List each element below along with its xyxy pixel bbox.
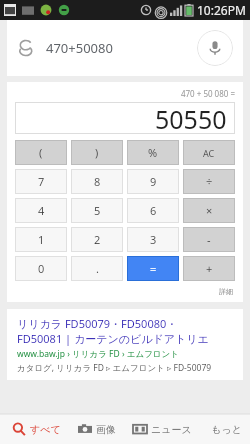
staticText: ×: [206, 203, 213, 218]
button[interactable]: .: [71, 256, 123, 281]
staticText: すべて: [30, 423, 61, 436]
staticText: 10:26PM: [197, 2, 246, 18]
button[interactable]: 8: [71, 169, 123, 194]
staticText: .: [96, 261, 99, 276]
button[interactable]: もっと: [209, 423, 244, 436]
button[interactable]: ニュース: [131, 422, 194, 436]
button[interactable]: 9: [127, 169, 179, 194]
staticText: 3: [150, 232, 157, 247]
staticText: 画像: [96, 423, 116, 436]
button[interactable]: 3: [127, 227, 179, 252]
button[interactable]: すべて: [10, 422, 63, 436]
staticText: +: [206, 261, 213, 276]
button[interactable]: +: [183, 256, 235, 281]
staticText: ): [95, 145, 99, 160]
button[interactable]: 470+50080: [7, 20, 243, 76]
staticText: 8: [94, 174, 101, 189]
button[interactable]: ÷: [183, 169, 235, 194]
button[interactable]: 1: [15, 227, 67, 252]
staticText: FD50081 | カーテンのビルドアトリエ: [17, 331, 209, 346]
staticText: カタログ, リリカラ FD ▹ エムフロント ▹ FD-50079: [17, 362, 212, 374]
staticText: www.baw.jp › リリカラ FD › エムフロント: [17, 348, 179, 360]
button[interactable]: (: [15, 140, 67, 165]
staticText: 6: [150, 203, 157, 218]
button[interactable]: 4: [15, 198, 67, 223]
staticText: 1: [38, 232, 45, 247]
staticText: 470 + 50 080 =: [15, 88, 235, 99]
staticText: 7: [38, 174, 45, 189]
staticText: リリカラ FD50079・FD50080・: [17, 316, 178, 331]
staticText: ニュース: [151, 423, 192, 436]
button[interactable]: 6: [127, 198, 179, 223]
button[interactable]: Voice search: [197, 30, 233, 66]
button[interactable]: 0: [15, 256, 67, 281]
button[interactable]: -: [183, 227, 235, 252]
staticText: 0: [38, 261, 45, 276]
staticText: =: [150, 261, 157, 276]
staticText: 5: [94, 203, 101, 218]
button[interactable]: =: [127, 256, 179, 281]
staticText: -: [207, 232, 211, 247]
staticText: AC: [203, 147, 215, 159]
staticText: %: [148, 145, 158, 160]
button[interactable]: 2: [71, 227, 123, 252]
staticText: (: [39, 145, 43, 160]
staticText: 50550: [155, 102, 227, 134]
button[interactable]: %: [127, 140, 179, 165]
button[interactable]: 画像: [76, 422, 118, 436]
button[interactable]: 7: [15, 169, 67, 194]
staticText: 9: [150, 174, 157, 189]
button[interactable]: AC: [183, 140, 235, 165]
staticText: ÷: [206, 174, 213, 189]
staticText: 4: [38, 203, 45, 218]
button[interactable]: 詳細: [15, 287, 235, 296]
staticText: 2: [94, 232, 101, 247]
button[interactable]: 5: [71, 198, 123, 223]
button[interactable]: リリカラ FD50079・FD50080・: [7, 309, 243, 380]
button[interactable]: ): [71, 140, 123, 165]
button[interactable]: ×: [183, 198, 235, 223]
staticText: 470+50080: [46, 39, 113, 57]
